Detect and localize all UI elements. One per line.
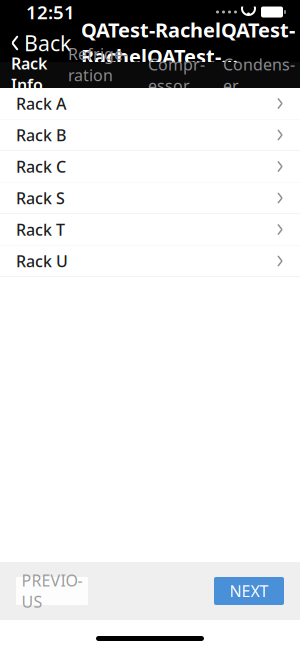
staticText: Rack A [16, 93, 66, 114]
staticText: Condenser [223, 54, 295, 96]
staticText: Compressor [148, 54, 205, 96]
staticText: Rack Info [11, 53, 47, 95]
staticText: Rack C [16, 156, 66, 177]
button[interactable]: Rack U [0, 245, 300, 277]
button[interactable]: Refrigeration System [58, 62, 138, 88]
staticText: 12:51 [26, 0, 75, 24]
staticText: Rack T [16, 219, 65, 240]
button[interactable]: Compressor [138, 62, 215, 88]
staticText: QATest-RachelQATest-RachelQATest-… [81, 16, 295, 69]
button[interactable]: Back [0, 23, 71, 63]
staticText: NEXT [229, 580, 268, 602]
button[interactable]: NEXT [214, 577, 284, 605]
staticText: Refrigeration System [68, 43, 128, 107]
button[interactable]: Rack A [0, 88, 300, 119]
button[interactable]: PREVIOUS [16, 577, 88, 605]
staticText: Rack S [16, 187, 65, 209]
button[interactable]: Rack T [0, 214, 300, 245]
button[interactable]: Rack Info [0, 62, 58, 88]
staticText: PREVIOUS [21, 570, 82, 612]
button[interactable]: Rack B [0, 119, 300, 151]
button[interactable]: Condenser [215, 62, 295, 88]
staticText: Back [24, 29, 71, 57]
staticText: Rack U [16, 250, 68, 272]
button[interactable]: Rack S [0, 182, 300, 214]
staticText: Rack B [16, 124, 66, 146]
button[interactable]: Rack C [0, 151, 300, 182]
